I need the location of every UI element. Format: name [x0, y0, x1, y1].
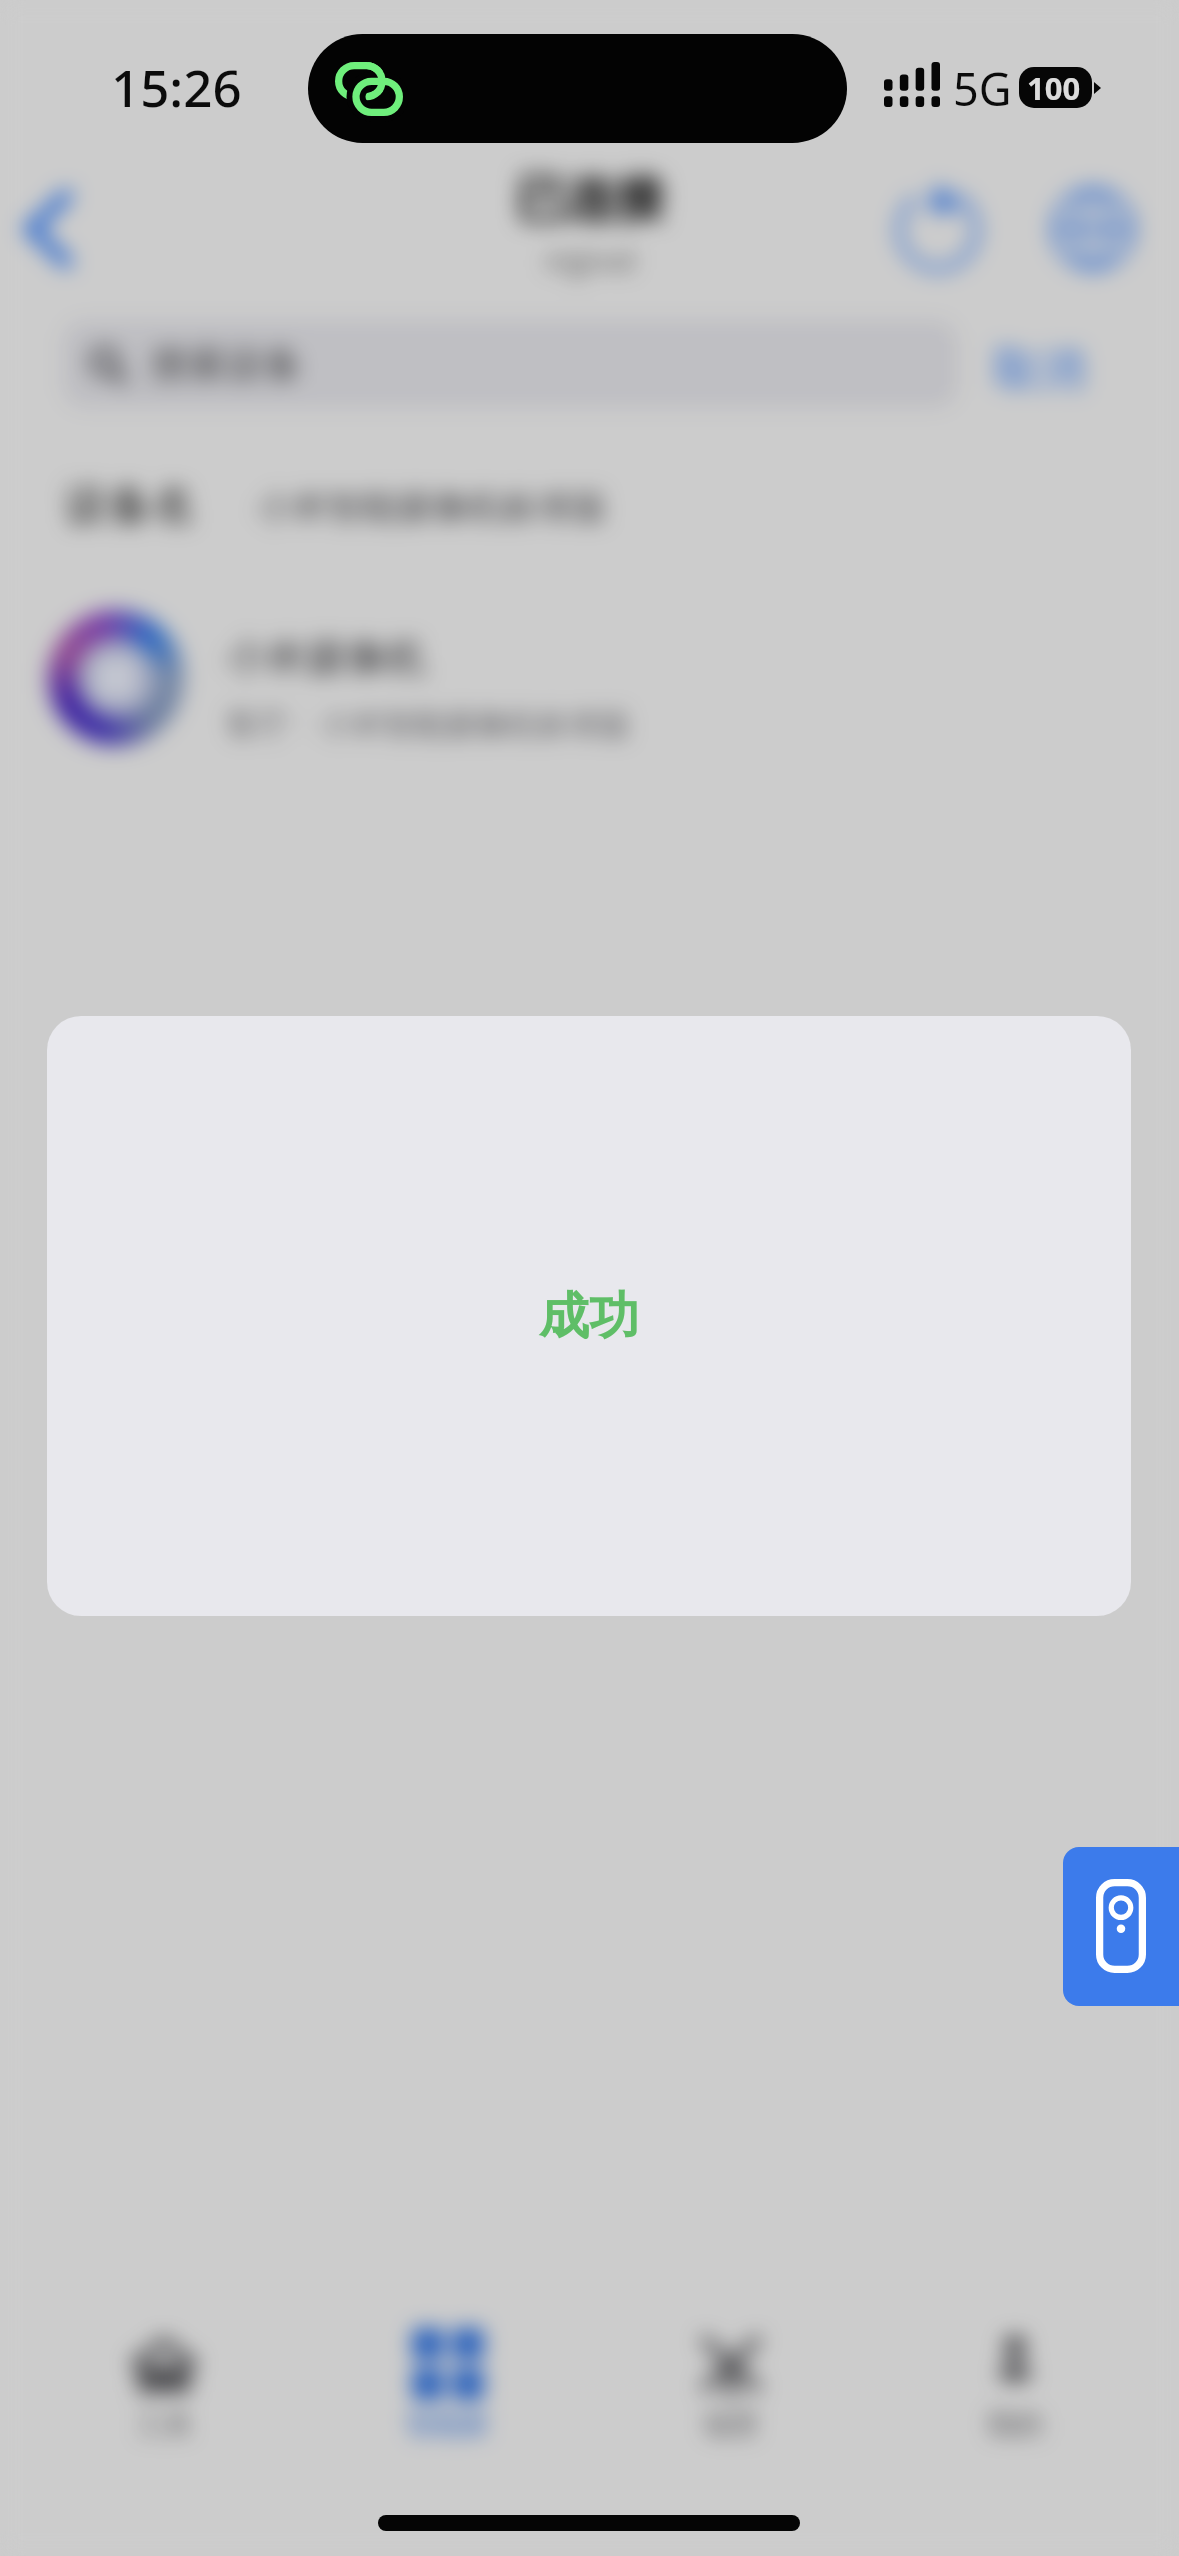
button[interactable]: 我的 [895, 2325, 1135, 2442]
staticText: 小米智能摄像机标准版 [257, 485, 607, 529]
staticText: 场景 [703, 2407, 759, 2442]
staticText: 15:26 [111, 52, 242, 121]
button[interactable]: Refresh [884, 178, 992, 278]
button[interactable]: Search devices [62, 320, 958, 408]
staticText: mjjnvd [545, 241, 635, 279]
button[interactable]: 工具 [44, 2310, 284, 2460]
button[interactable]: 成功 [47, 1016, 1131, 1616]
button[interactable]: 工具 [44, 2325, 284, 2442]
button[interactable]: Xiaomi camera device [40, 600, 1140, 760]
button[interactable]: 场景 [611, 2310, 851, 2460]
button[interactable]: Cancel [980, 320, 1120, 408]
staticText: 客厅 · 小米智能摄像机标准版 [226, 702, 631, 744]
button[interactable]: Remote control [1063, 1847, 1179, 2006]
staticText: 100 [1027, 67, 1081, 108]
button[interactable]: Open in browser [1040, 178, 1148, 278]
staticText: 设备名 [64, 478, 196, 533]
staticText: 已连接 [515, 168, 665, 231]
staticText: 取消 [993, 341, 1085, 399]
staticText: 搜索设备 [150, 340, 302, 388]
staticText: 我的 [987, 2407, 1043, 2442]
button[interactable]: Back [8, 178, 104, 278]
staticText: 工具 [136, 2407, 192, 2442]
button[interactable]: 智能家 [328, 2310, 568, 2460]
button[interactable]: 智能家 [328, 2325, 568, 2442]
staticText: 成功 [539, 1285, 639, 1348]
staticText: 小米摄像机 [226, 632, 426, 682]
button[interactable]: 场景 [611, 2325, 851, 2442]
staticText: 5G [953, 58, 1012, 119]
staticText: 智能家 [406, 2407, 490, 2442]
button[interactable]: 我的 [895, 2310, 1135, 2460]
